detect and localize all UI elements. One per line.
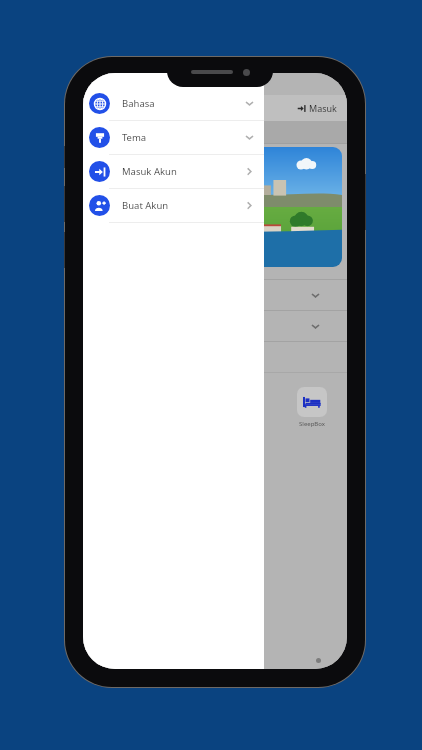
button[interactable]: Masuk Akun	[83, 155, 264, 188]
button[interactable]: Bahasa	[83, 87, 264, 120]
button[interactable]: Masuk	[287, 98, 347, 118]
button[interactable]: BOOK NOW	[88, 147, 342, 267]
staticText: Tema	[122, 131, 147, 144]
other: Expand	[310, 290, 321, 301]
button[interactable]: Expand	[83, 311, 347, 341]
button[interactable]: Tema	[83, 121, 264, 154]
staticText: SleepBox	[299, 420, 325, 428]
button[interactable]: Expand	[83, 280, 347, 310]
button[interactable]: Buat Akun	[83, 189, 264, 222]
staticText: Masuk	[309, 102, 337, 114]
staticText: Masuk Akun	[122, 165, 177, 178]
button[interactable]: SleepBox	[297, 387, 327, 428]
staticText: Buat Akun	[122, 199, 169, 212]
staticText: Bahasa	[122, 97, 155, 110]
other: Expand	[310, 321, 321, 332]
